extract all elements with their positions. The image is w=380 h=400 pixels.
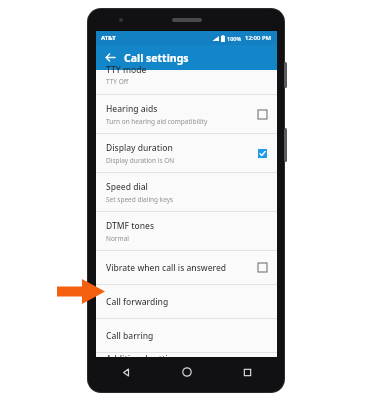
staticText: Set speed dialing keys bbox=[106, 195, 174, 204]
staticText: AT&T bbox=[101, 34, 116, 42]
staticText: Call settings bbox=[124, 51, 189, 65]
staticText: Display duration is ON bbox=[106, 156, 175, 165]
staticText: Normal bbox=[106, 234, 129, 243]
staticText: TTY mode bbox=[106, 64, 147, 76]
button[interactable]: Recent apps bbox=[217, 360, 277, 384]
staticText: Call forwarding bbox=[106, 296, 269, 308]
staticText: Display duration bbox=[106, 142, 173, 154]
staticText: Hearing aids bbox=[106, 103, 158, 115]
button[interactable]: Vibrate when call is answered bbox=[96, 251, 277, 284]
staticText: Turn on hearing aid compatibility bbox=[106, 117, 208, 126]
button[interactable]: Toggle bbox=[256, 147, 269, 160]
staticText: 12:00 PM bbox=[245, 34, 272, 42]
button[interactable]: Back bbox=[96, 45, 124, 70]
button[interactable]: Additional settings bbox=[96, 353, 277, 357]
button[interactable]: Display duration bbox=[96, 134, 277, 172]
button[interactable]: Toggle bbox=[256, 261, 269, 274]
staticText: Call barring bbox=[106, 330, 269, 342]
staticText: Vibrate when call is answered bbox=[106, 262, 256, 274]
button[interactable]: Hearing aids bbox=[96, 95, 277, 133]
staticText: DTMF tones bbox=[106, 220, 155, 232]
button[interactable]: Call barring bbox=[96, 319, 277, 352]
button[interactable]: Back bbox=[96, 360, 157, 384]
button[interactable]: DTMF tones bbox=[96, 212, 277, 250]
staticText: 100% bbox=[227, 35, 242, 42]
button[interactable]: Speed dial bbox=[96, 173, 277, 211]
staticText: Additional settings bbox=[106, 353, 269, 357]
button[interactable]: Toggle bbox=[256, 108, 269, 121]
button[interactable]: Call forwarding bbox=[96, 285, 277, 318]
staticText: Speed dial bbox=[106, 181, 148, 193]
staticText: TTY Off bbox=[106, 77, 129, 86]
button[interactable]: Home bbox=[157, 360, 217, 384]
